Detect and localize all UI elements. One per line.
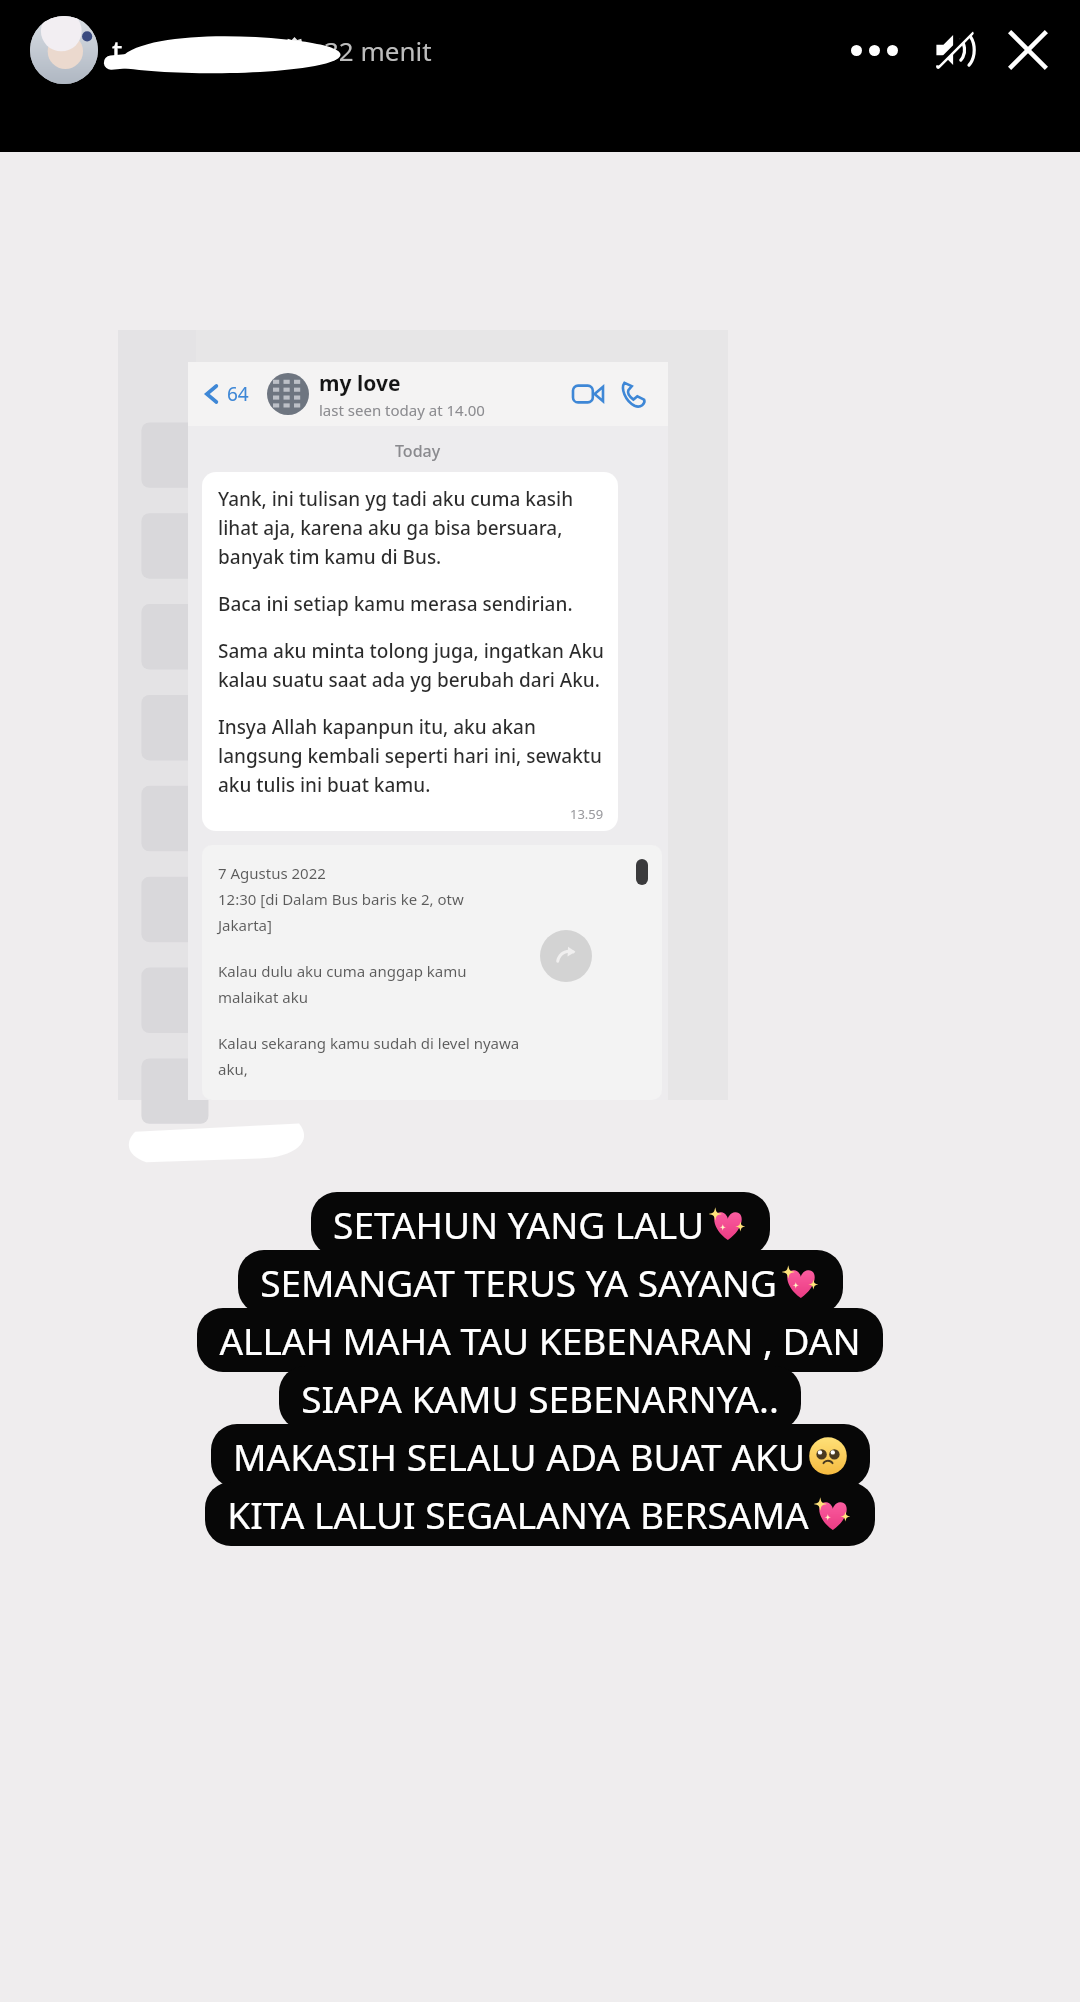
- button[interactable]: Back: [202, 381, 249, 407]
- staticText: 64: [227, 381, 249, 407]
- staticText: SIAPA KAMU SEBENARNYA..: [301, 1373, 779, 1423]
- staticText: Jakarta]: [218, 915, 272, 935]
- staticText: Kalau sekarang kamu sudah di level nyawa: [218, 1033, 520, 1053]
- button[interactable]: Video call: [568, 374, 608, 414]
- button[interactable]: 7 Agustus 2022: [202, 845, 662, 1100]
- staticText: kalau suatu saat ada yg berubah dari Aku…: [218, 667, 600, 693]
- button[interactable]: SIAPA KAMU SEBENARNYA..: [279, 1366, 801, 1430]
- staticText: ALLAH MAHA TAU KEBENARAN , DAN: [219, 1315, 861, 1365]
- button[interactable]: Share: [540, 930, 592, 982]
- staticText: lihat aja, karena aku ga bisa bersuara,: [218, 515, 563, 541]
- staticText: SEMANGAT TERUS YA SAYANG: [260, 1257, 777, 1307]
- staticText: 13.59: [570, 805, 604, 823]
- button[interactable]: ALLAH MAHA TAU KEBENARAN , DAN: [197, 1308, 883, 1372]
- staticText: Baca ini setiap kamu merasa sendirian.: [218, 591, 573, 617]
- staticText: malaikat aku: [218, 987, 309, 1007]
- staticText: my love: [319, 369, 401, 398]
- staticText: last seen today at 14.00: [319, 400, 485, 420]
- button[interactable]: SEMANGAT TERUS YA SAYANG: [238, 1250, 843, 1314]
- staticText: Sama aku minta tolong juga, ingatkan Aku: [218, 638, 604, 664]
- button[interactable]: Profile picture: [30, 16, 98, 84]
- button[interactable]: t p hasyia: [112, 32, 271, 69]
- button[interactable]: Mute: [928, 24, 980, 76]
- staticText: MAKASIH SELALU ADA BUAT AKU: [233, 1431, 805, 1481]
- staticText: aku tulis ini buat kamu.: [218, 772, 431, 798]
- button[interactable]: MAKASIH SELALU ADA BUAT AKU: [211, 1424, 870, 1488]
- staticText: Insya Allah kapanpun itu, aku akan: [218, 714, 536, 740]
- staticText: aku,: [218, 1059, 248, 1079]
- staticText: banyak tim kamu di Bus.: [218, 544, 442, 570]
- staticText: 7 Agustus 2022: [218, 863, 326, 883]
- button[interactable]: SETAHUN YANG LALU: [311, 1192, 770, 1256]
- button[interactable]: More options: [841, 27, 908, 74]
- staticText: 32 menit: [324, 33, 432, 68]
- staticText: Yank, ini tulisan yg tadi aku cuma kasih: [218, 486, 574, 512]
- staticText: SETAHUN YANG LALU: [333, 1199, 704, 1249]
- button[interactable]: KITA LALUI SEGALANYA BERSAMA: [205, 1482, 875, 1546]
- staticText: KITA LALUI SEGALANYA BERSAMA: [227, 1489, 809, 1539]
- staticText: langsung kembali seperti hari ini, sewak…: [218, 743, 603, 769]
- staticText: Kalau dulu aku cuma anggap kamu: [218, 961, 467, 981]
- button[interactable]: Close: [1002, 24, 1054, 76]
- button[interactable]: Voice call: [614, 374, 654, 414]
- staticText: 12:30 [di Dalam Bus baris ke 2, otw: [218, 889, 464, 909]
- staticText: Today: [395, 440, 441, 462]
- button[interactable]: Yank, ini tulisan yg tadi aku cuma kasih: [202, 472, 618, 831]
